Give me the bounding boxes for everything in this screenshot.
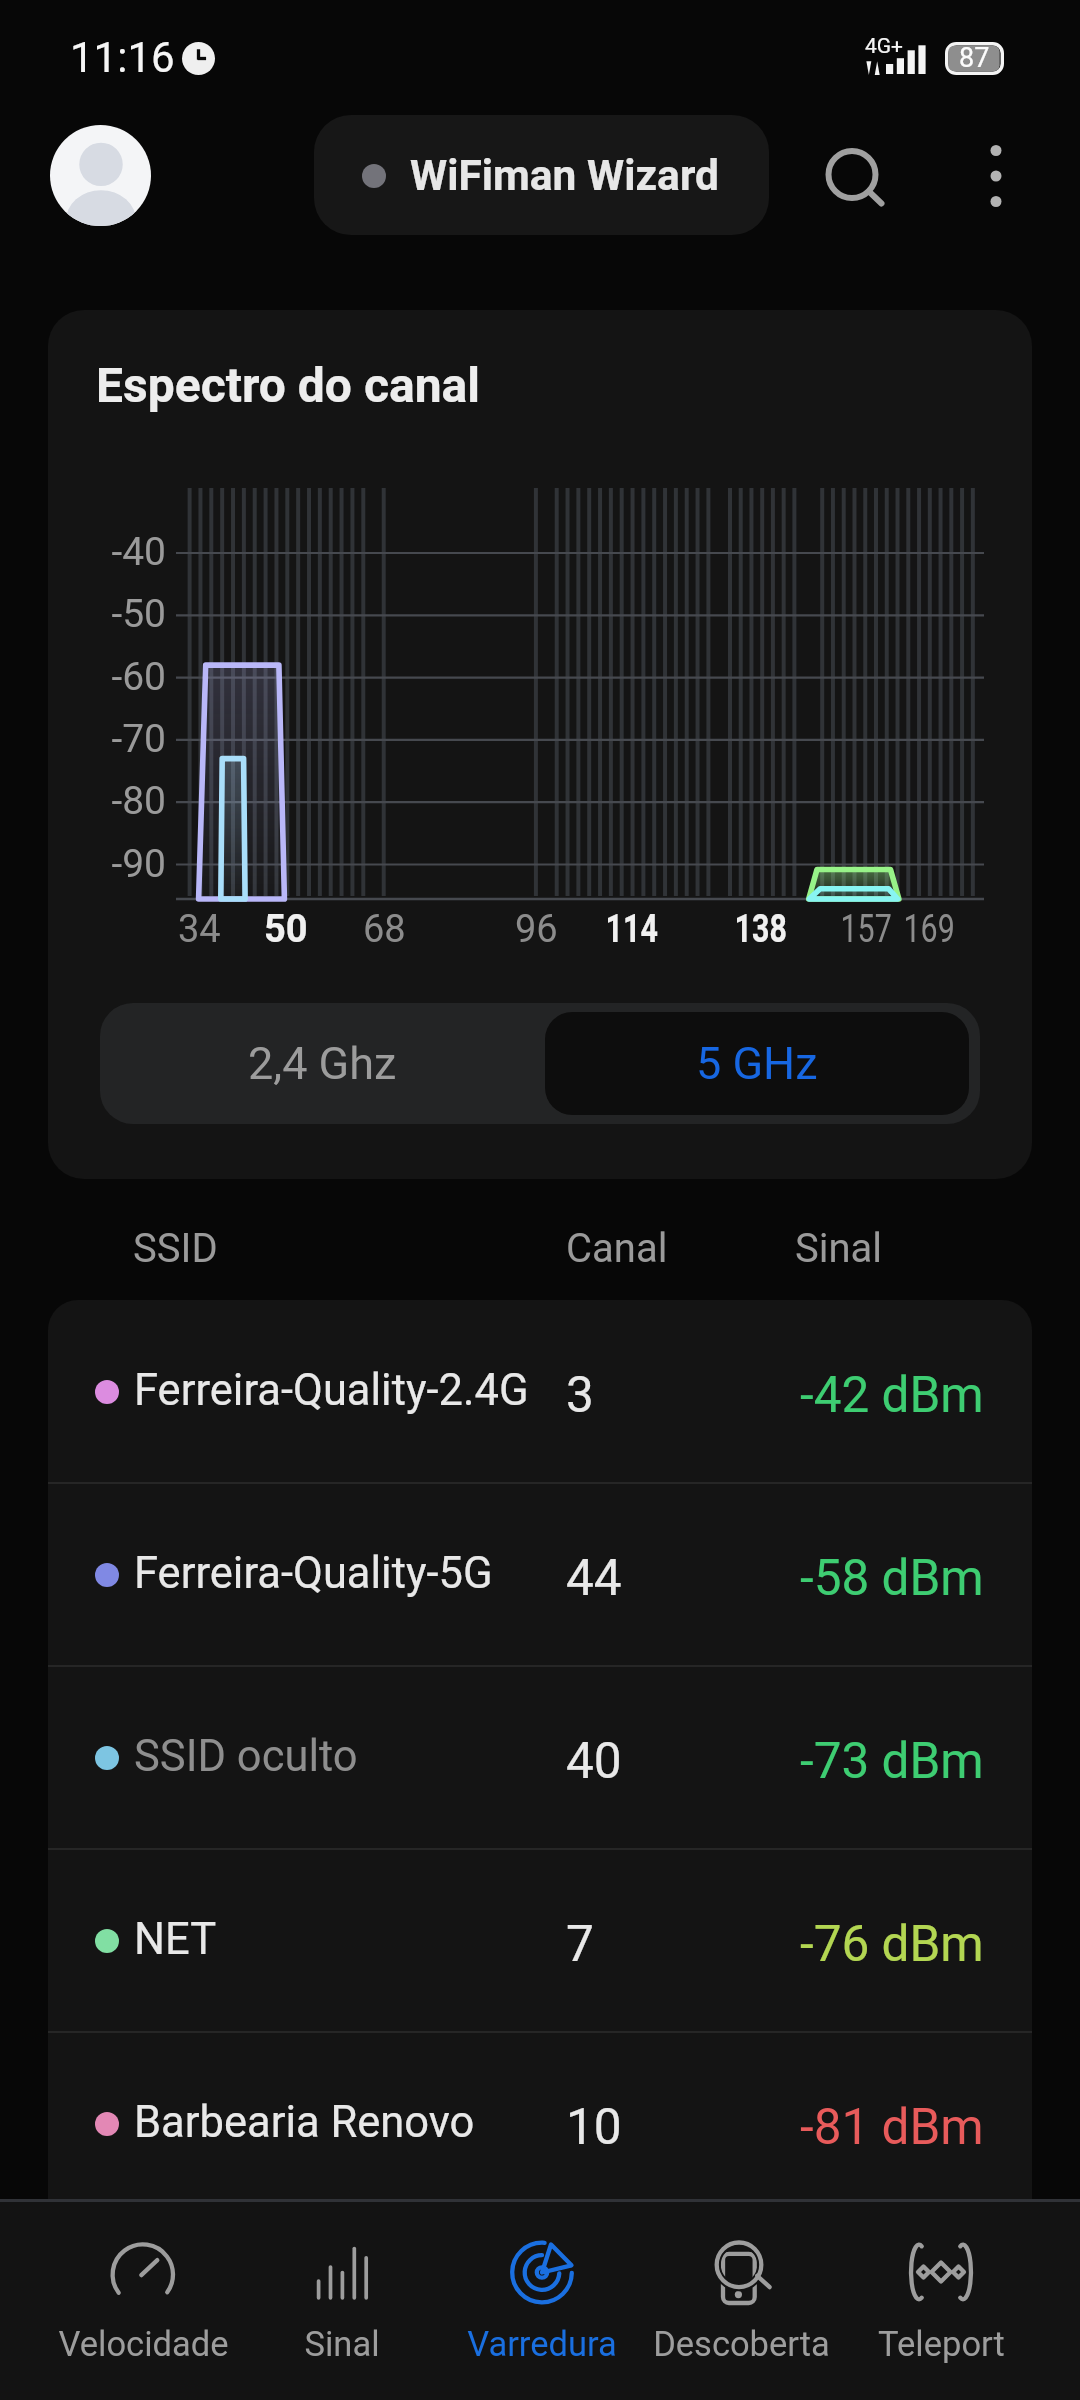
staticText: SSID <box>133 1225 218 1272</box>
staticText: Descoberta <box>653 2324 830 2364</box>
staticText: -81 dBm <box>800 2098 984 2156</box>
button[interactable]: NET <box>48 1849 1032 2032</box>
staticText: Teleport <box>878 2324 1005 2364</box>
button[interactable]: 2,4 Ghz <box>100 1003 545 1124</box>
button[interactable]: Descoberta <box>641 2205 841 2395</box>
staticText: Sinal <box>304 2324 380 2364</box>
staticText: 68 <box>363 907 406 952</box>
button[interactable]: Velocidade <box>43 2205 243 2395</box>
staticText: Espectro do canal <box>96 357 481 413</box>
staticText: -80 <box>38 778 166 824</box>
staticText: 10 <box>566 2098 622 2156</box>
staticText: -90 <box>38 841 166 887</box>
staticText: 2,4 Ghz <box>248 1037 397 1090</box>
staticText: Ferreira-Quality-5G <box>134 1548 493 1599</box>
staticText: -58 dBm <box>800 1549 984 1607</box>
button[interactable]: Ferreira-Quality-2.4G <box>48 1300 1032 1483</box>
staticText: -73 dBm <box>800 1732 984 1790</box>
button[interactable]: Ferreira-Quality-5G <box>48 1483 1032 1666</box>
button[interactable]: 5 GHz <box>545 1012 969 1115</box>
staticText: Canal <box>566 1225 668 1272</box>
staticText: 44 <box>566 1549 622 1607</box>
staticText: -60 <box>38 654 166 700</box>
staticText: 87 <box>959 42 990 74</box>
button[interactable] <box>314 115 769 235</box>
staticText: 4G+ <box>865 34 904 59</box>
staticText: 40 <box>566 1732 622 1790</box>
staticText: 50 <box>264 907 308 952</box>
staticText: 114 <box>606 907 658 952</box>
staticText: 138 <box>735 907 787 952</box>
staticText: 5 GHz <box>696 1037 818 1090</box>
staticText: SSID oculto <box>134 1731 358 1782</box>
button[interactable]: Sinal <box>242 2205 442 2395</box>
button[interactable]: More options <box>944 124 1048 228</box>
button[interactable]: Profile <box>50 125 151 226</box>
staticText: -40 <box>38 529 166 575</box>
button[interactable]: Barbearia Renovo <box>48 2032 1032 2215</box>
staticText: Barbearia Renovo <box>134 2097 475 2148</box>
staticText: -70 <box>38 716 166 762</box>
staticText: 169 <box>903 907 955 952</box>
staticText: Varredura <box>467 2324 617 2364</box>
staticText: Velocidade <box>58 2324 229 2364</box>
staticText: NET <box>134 1914 217 1965</box>
staticText: 157 <box>840 907 892 952</box>
staticText: WiFiman Wizard <box>410 151 719 201</box>
button[interactable]: Teleport <box>841 2205 1041 2395</box>
staticText: -76 dBm <box>800 1915 984 1973</box>
button[interactable]: Varredura <box>442 2205 642 2395</box>
staticText: Ferreira-Quality-2.4G <box>134 1365 529 1416</box>
staticText: 11:16 <box>70 33 175 82</box>
staticText: -50 <box>38 591 166 637</box>
staticText: Sinal <box>795 1225 883 1272</box>
staticText: 3 <box>566 1366 594 1424</box>
staticText: -42 dBm <box>800 1366 984 1424</box>
staticText: 96 <box>515 907 558 952</box>
staticText: 34 <box>178 907 221 952</box>
staticText: 7 <box>566 1915 594 1973</box>
button[interactable]: SSID oculto <box>48 1666 1032 1849</box>
button[interactable]: Search <box>806 126 910 230</box>
